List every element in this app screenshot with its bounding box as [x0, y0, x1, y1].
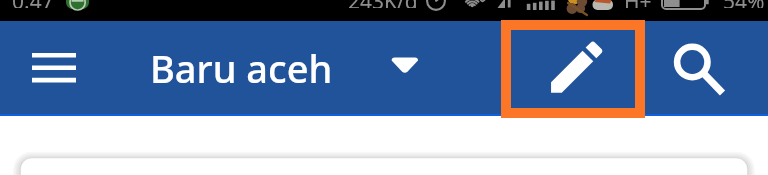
button[interactable]: Search	[660, 33, 736, 103]
staticText: 0:47	[12, 0, 54, 8]
button[interactable]: Compose new post	[540, 33, 616, 103]
button[interactable]	[20, 158, 748, 175]
staticText: 243K/d	[348, 0, 418, 8]
staticText: 54%	[723, 0, 765, 8]
button[interactable]: Open navigation menu	[23, 38, 84, 98]
staticText: Baru aceh	[150, 42, 333, 94]
button[interactable]: Switch page	[377, 37, 433, 97]
staticText: H+	[624, 0, 652, 8]
